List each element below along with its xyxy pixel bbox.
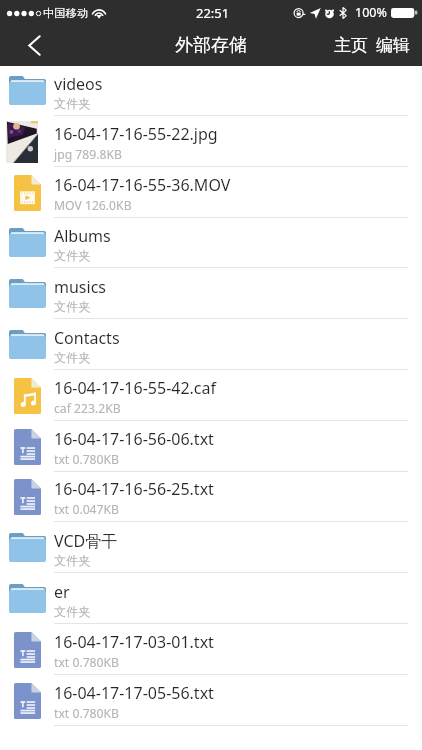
staticText: 16-04-17-16-55-36.MOV bbox=[54, 174, 231, 196]
button[interactable]: Albums bbox=[0, 217, 422, 268]
staticText: musics bbox=[54, 276, 106, 298]
staticText: txt 0.047KB bbox=[54, 501, 120, 518]
button[interactable]: 16-04-17-16-56-06.txt bbox=[0, 421, 422, 472]
staticText: 文件夹 bbox=[54, 299, 91, 314]
staticText: 文件夹 bbox=[54, 248, 91, 263]
button[interactable]: musics bbox=[0, 268, 422, 319]
staticText: 16-04-17-16-55-42.caf bbox=[54, 377, 217, 399]
staticText: 文件夹 bbox=[54, 604, 91, 619]
button[interactable]: Contacts bbox=[0, 319, 422, 370]
staticText: 文件夹 bbox=[54, 96, 91, 111]
staticText: txt 0.780KB bbox=[54, 451, 120, 468]
staticText: 中国移动 bbox=[43, 6, 89, 20]
staticText: txt 0.780KB bbox=[54, 705, 120, 722]
button[interactable]: 主页 bbox=[330, 26, 372, 65]
staticText: VCD骨干 bbox=[54, 530, 118, 552]
staticText: 100% bbox=[355, 4, 387, 21]
staticText: 22:51 bbox=[196, 4, 230, 22]
staticText: er bbox=[54, 581, 70, 603]
staticText: MOV 126.0KB bbox=[54, 197, 132, 214]
button[interactable]: 16-04-17-16-55-36.MOV bbox=[0, 167, 422, 218]
staticText: 16-04-17-16-56-06.txt bbox=[54, 428, 214, 450]
staticText: 文件夹 bbox=[54, 553, 91, 568]
button[interactable]: 16-04-17-17-03-01.txt bbox=[0, 624, 422, 675]
staticText: 16-04-17-16-55-22.jpg bbox=[54, 123, 218, 145]
staticText: jpg 789.8KB bbox=[54, 146, 122, 163]
button[interactable]: Back bbox=[0, 25, 58, 66]
staticText: 外部存储 bbox=[175, 34, 247, 57]
staticText: txt 0.780KB bbox=[54, 654, 120, 671]
button[interactable]: 16-04-17-16-55-22.jpg bbox=[0, 116, 422, 167]
button[interactable]: er bbox=[0, 573, 422, 624]
staticText: 16-04-17-17-03-01.txt bbox=[54, 631, 214, 653]
staticText: 16-04-17-16-56-25.txt bbox=[54, 478, 214, 500]
staticText: Contacts bbox=[54, 327, 120, 349]
staticText: videos bbox=[54, 73, 103, 95]
staticText: 16-04-17-17-05-56.txt bbox=[54, 682, 214, 704]
button[interactable]: 16-04-17-16-56-25.txt bbox=[0, 471, 422, 522]
button[interactable]: 编辑 bbox=[372, 26, 414, 65]
button[interactable]: videos bbox=[0, 65, 422, 116]
staticText: Albums bbox=[54, 225, 111, 247]
staticText: caf 223.2KB bbox=[54, 400, 121, 417]
button[interactable]: VCD骨干 bbox=[0, 522, 422, 573]
button[interactable]: 16-04-17-16-55-42.caf bbox=[0, 370, 422, 421]
button[interactable]: 16-04-17-17-05-56.txt bbox=[0, 675, 422, 726]
staticText: 文件夹 bbox=[54, 350, 91, 365]
